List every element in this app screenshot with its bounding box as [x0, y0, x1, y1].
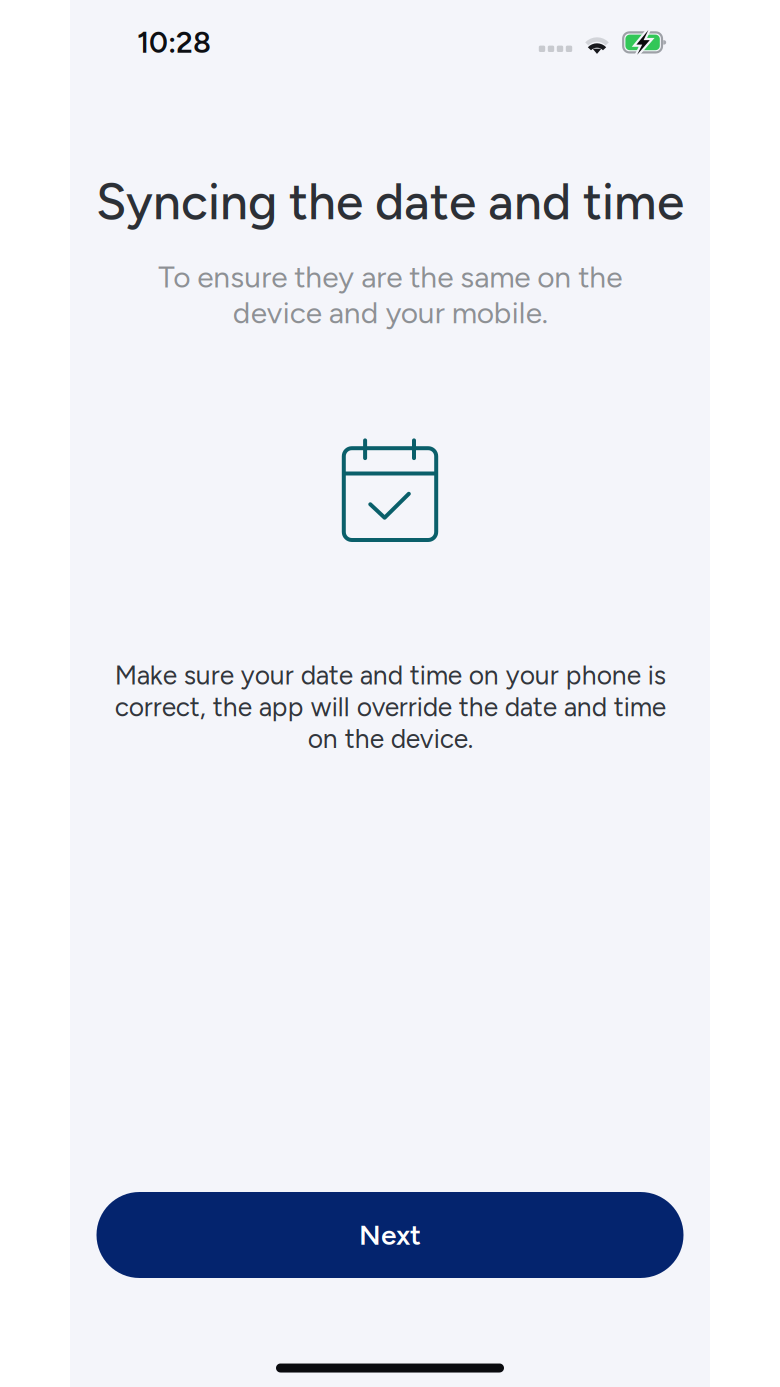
staticText: Syncing the date and time — [96, 172, 684, 232]
staticText: To ensure they are the same on the devic… — [158, 259, 622, 331]
staticText: Next — [359, 1218, 421, 1252]
button[interactable]: Next — [96, 1192, 683, 1278]
staticText: Make sure your date and time on your pho… — [114, 659, 665, 754]
staticText: 10:28 — [137, 25, 211, 60]
